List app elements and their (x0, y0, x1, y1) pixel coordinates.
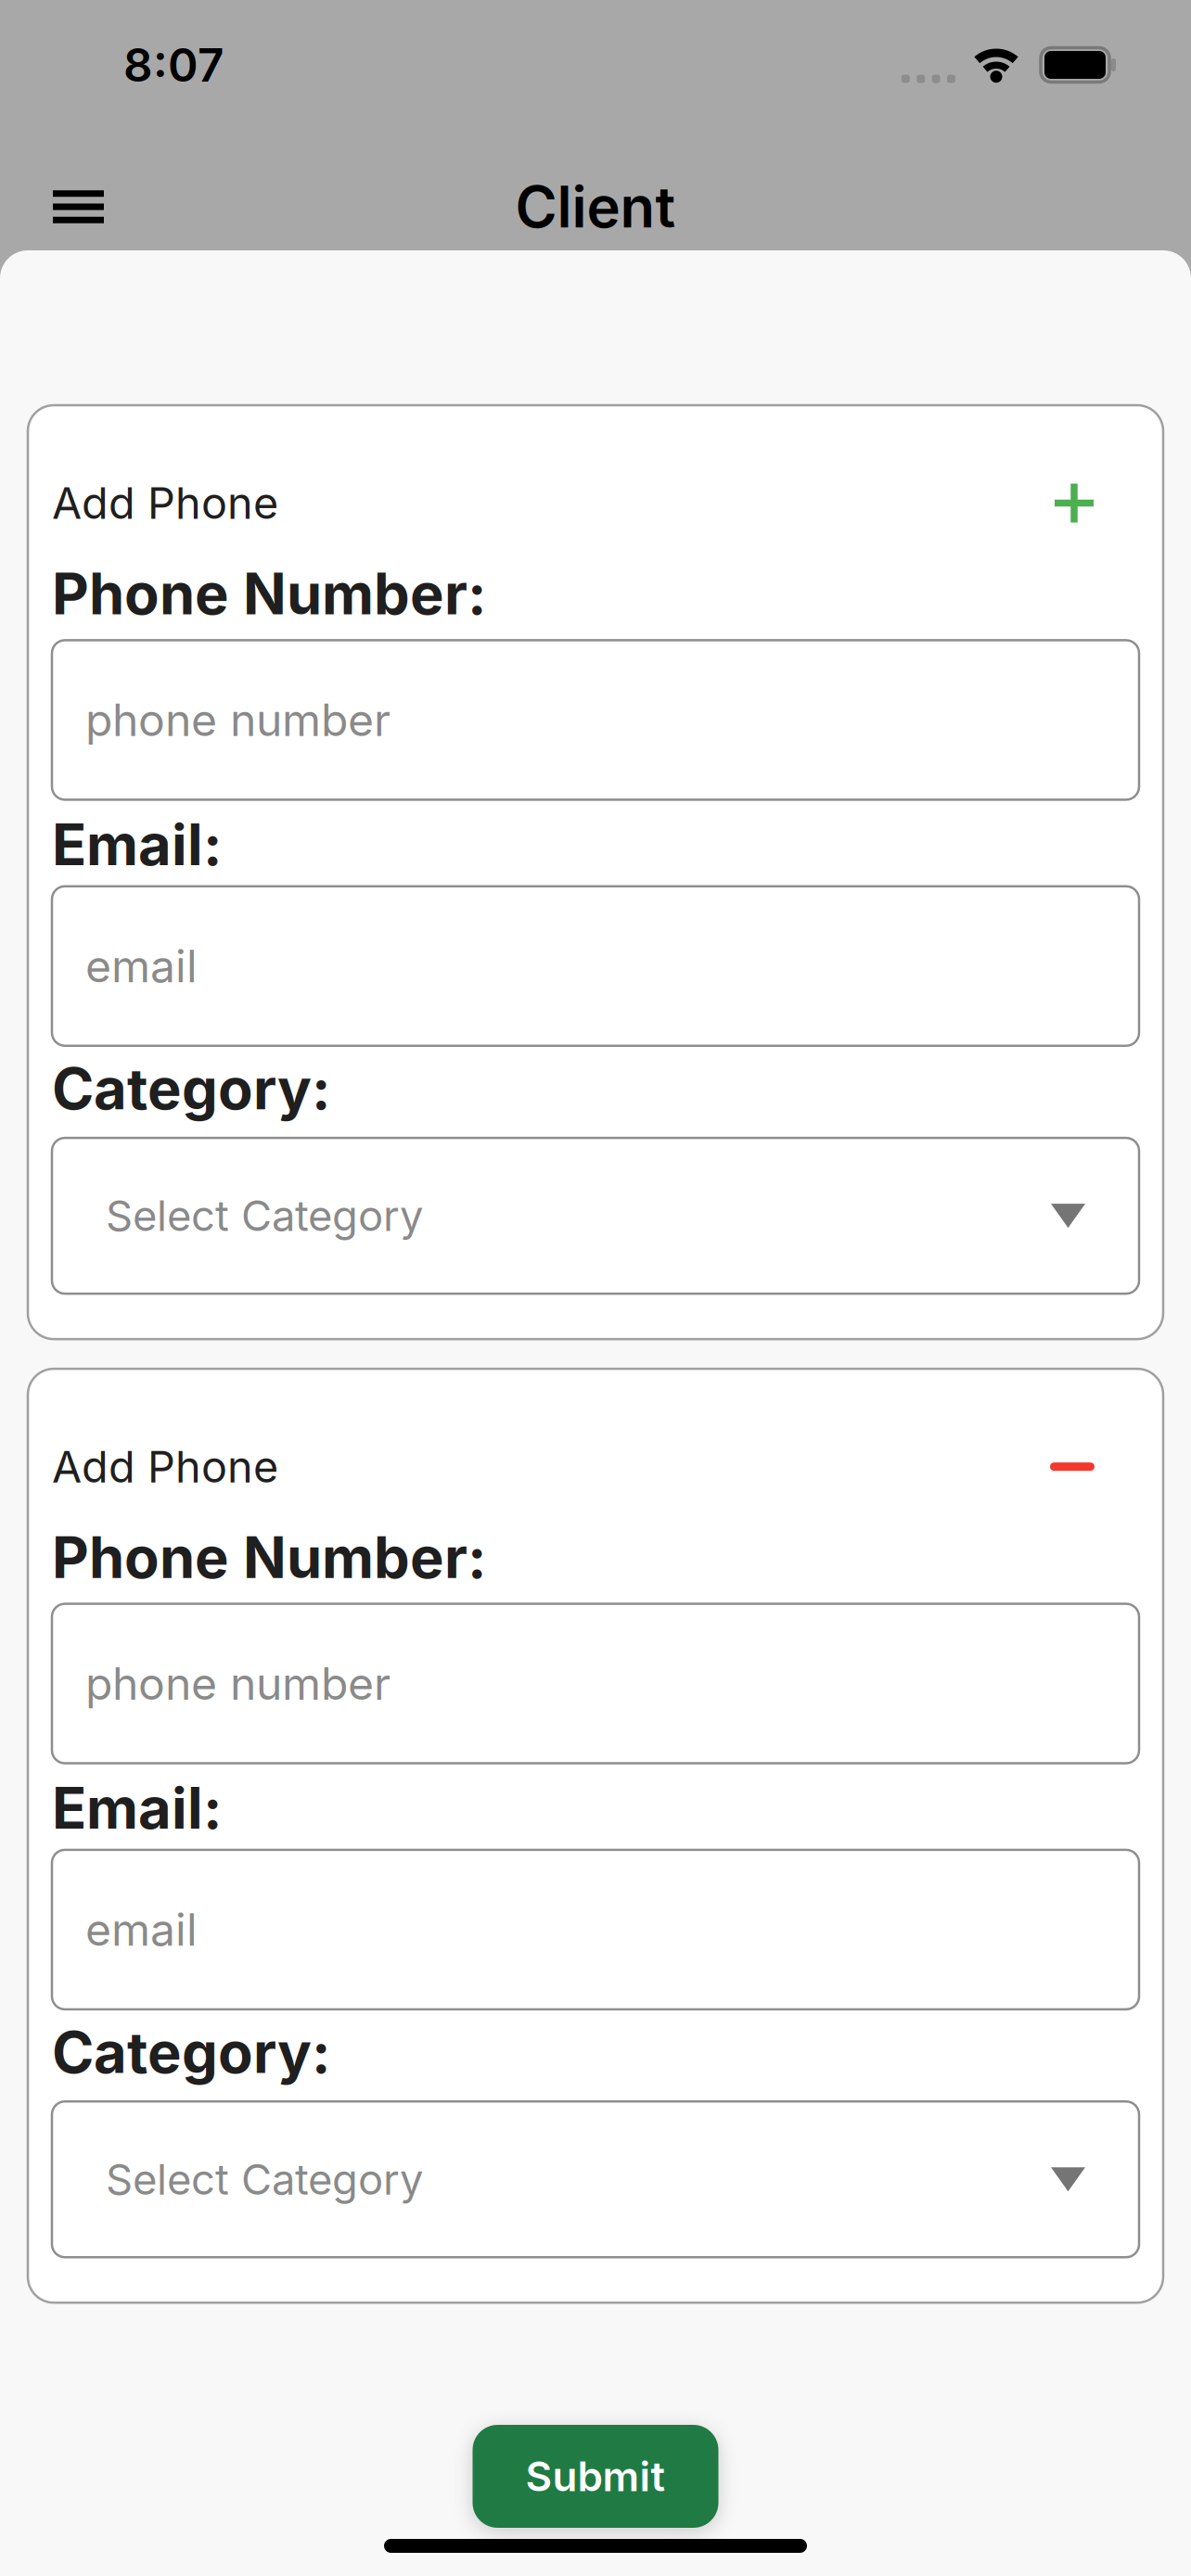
button[interactable]: Phone number (52, 1604, 1139, 1763)
staticText: Category: (52, 2019, 330, 2086)
staticText: Select Category (106, 1191, 423, 1241)
button[interactable]: Select Category (52, 1138, 1139, 1294)
button[interactable]: Phone number (52, 640, 1139, 800)
staticText: Phone Number: (52, 560, 486, 627)
button[interactable]: Email (52, 1850, 1139, 2009)
staticText: Select Category (106, 2155, 423, 2204)
button[interactable]: Submit (473, 2425, 718, 2528)
staticText: Category: (52, 1055, 330, 1122)
staticText: Phone Number: (52, 1524, 486, 1591)
staticText: Add Phone (52, 478, 278, 529)
staticText: Submit (525, 2452, 666, 2500)
staticText: email (85, 940, 198, 992)
button[interactable]: Email (52, 886, 1139, 1046)
button[interactable]: Add phone entry (1054, 483, 1095, 523)
staticText: phone number (85, 1657, 391, 1710)
button[interactable]: Select Category (52, 2101, 1139, 2257)
staticText: Email: (52, 1774, 222, 1841)
staticText: 8:07 (123, 38, 224, 92)
staticText: Client (515, 173, 676, 240)
staticText: Email: (52, 811, 222, 878)
button[interactable]: Remove phone entry (1050, 1446, 1095, 1487)
staticText: email (85, 1903, 198, 1956)
button[interactable]: Menu (53, 190, 104, 223)
staticText: Add Phone (52, 1441, 278, 1492)
staticText: phone number (85, 694, 391, 746)
